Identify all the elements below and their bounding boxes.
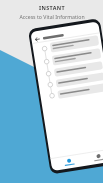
staticText: Access to Vital Information xyxy=(19,13,85,20)
staticText: INSTANT xyxy=(39,4,65,11)
